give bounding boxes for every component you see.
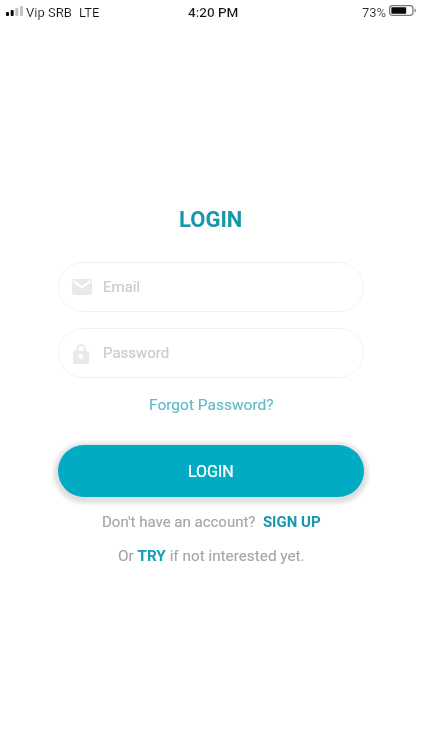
staticText: 4:20 PM [188,4,239,20]
staticText: LOGIN [179,207,243,233]
staticText: Password [103,344,170,362]
other: Email [72,279,92,295]
staticText: LTE [79,5,100,20]
staticText: Email [103,278,141,296]
button[interactable]: Forgot Password? [145,393,278,417]
staticText: Forgot Password? [149,396,274,414]
button[interactable]: Don't have an account? SIGN UP [102,513,321,531]
staticText: Or TRY if not interested yet. [118,547,305,565]
other: Password [73,344,89,364]
button[interactable]: LOGIN [58,445,364,497]
staticText: Vip SRB [26,5,72,20]
button[interactable]: Email [58,262,364,312]
staticText: Don't have an account? SIGN UP [102,513,321,531]
staticText: LOGIN [188,462,234,481]
button[interactable]: Password [58,328,364,378]
staticText: 73% [362,5,387,20]
button[interactable]: Or TRY if not interested yet. [118,547,305,565]
